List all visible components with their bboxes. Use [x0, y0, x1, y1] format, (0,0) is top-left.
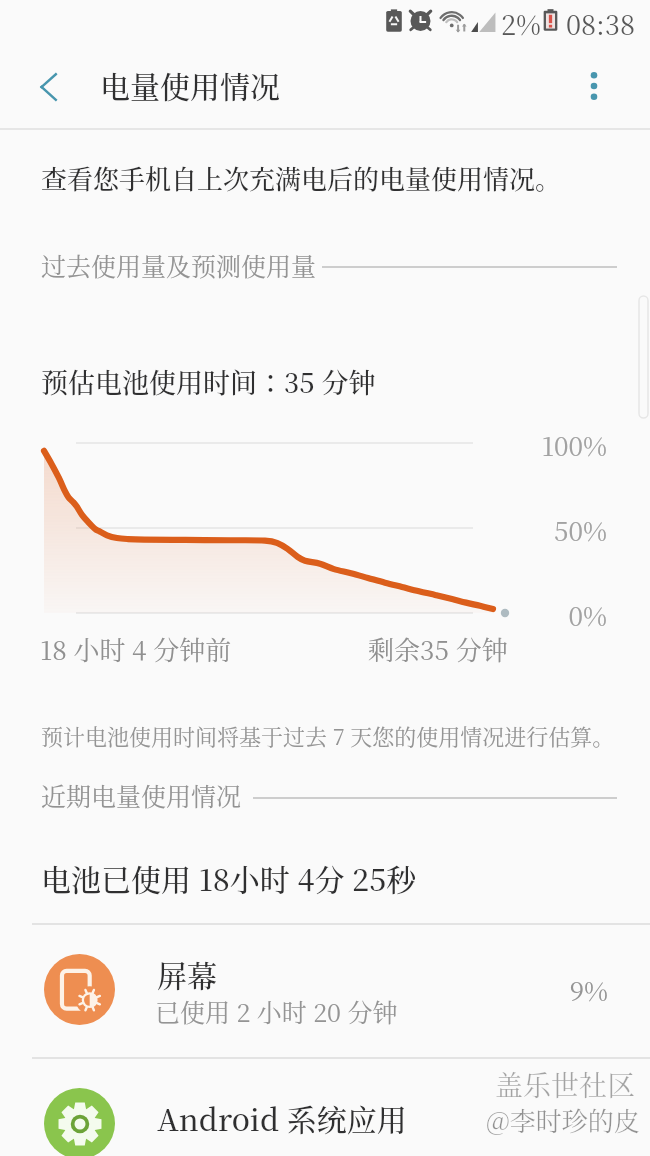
button[interactable]: 屏幕	[0, 924, 650, 1057]
staticText: 近期电量使用情况	[41, 777, 242, 813]
staticText: 50%	[537, 511, 607, 548]
staticText: 过去使用量及预测使用量	[41, 247, 317, 283]
button[interactable]: Back	[21, 59, 77, 115]
staticText: 屏幕	[157, 952, 217, 995]
staticText: 电量使用情况	[100, 63, 280, 106]
staticText: @李时珍的皮	[486, 1101, 640, 1138]
staticText: 0%	[537, 596, 607, 633]
staticText: 已使用 2 小时 20 分钟	[155, 993, 398, 1029]
staticText: 2%	[501, 4, 541, 43]
staticText: 剩余35 分钟	[368, 630, 508, 667]
staticText: 查看您手机自上次充满电后的电量使用情况。	[41, 159, 562, 196]
staticText: 18 小时 4 分钟前	[40, 630, 232, 667]
staticText: 盖乐世社区	[495, 1064, 636, 1104]
button[interactable]: Android 系统应用	[0, 1058, 650, 1156]
staticText: 08:38	[566, 4, 636, 43]
staticText: 预估电池使用时间：35 分钟	[41, 362, 376, 401]
staticText: 预计电池使用时间将基于过去 7 天您的使用情况进行估算。	[41, 720, 615, 752]
staticText: Android 系统应用	[157, 1096, 407, 1139]
staticText: 电池已使用 18小时 4分 25秒	[41, 856, 417, 899]
staticText: 9%	[538, 971, 608, 1008]
button[interactable]: More options	[570, 62, 618, 110]
staticText: 100%	[537, 426, 607, 463]
